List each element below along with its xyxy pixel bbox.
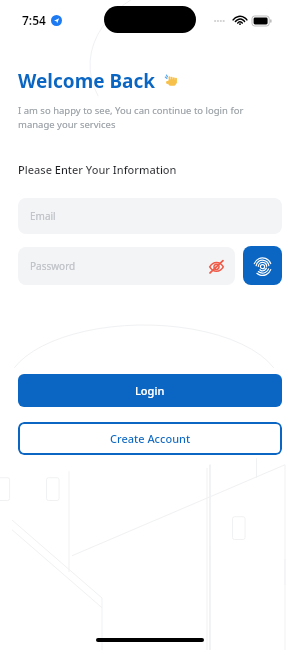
staticText: Create Account <box>110 431 191 446</box>
button[interactable]: Login <box>18 374 282 407</box>
button[interactable]: Fingerprint login <box>243 246 282 285</box>
staticText: Email <box>30 209 56 223</box>
button[interactable]: Email <box>18 198 282 234</box>
staticText: 7:54 <box>22 12 46 28</box>
button[interactable]: Create Account <box>18 422 282 455</box>
staticText: Welcome Back <box>18 68 156 94</box>
staticText: Login <box>135 383 165 398</box>
staticText: Password <box>30 259 76 273</box>
button[interactable]: Password <box>18 247 235 285</box>
staticText: I am so happy to see, You can continue t… <box>18 104 244 131</box>
button[interactable]: Toggle password visibility <box>207 257 225 275</box>
staticText: Please Enter Your Information <box>18 162 177 177</box>
